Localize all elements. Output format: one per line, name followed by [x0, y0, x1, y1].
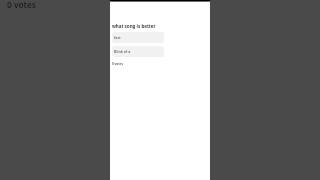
button[interactable]: Vote for Blink of a [112, 46, 164, 57]
staticText: Blink of a [114, 49, 131, 54]
staticText: 0 votes [112, 62, 124, 66]
button[interactable]: Vote for fast [112, 32, 164, 43]
staticText: what song is better [112, 23, 156, 29]
staticText: fast [114, 35, 121, 40]
staticText: 0 votes [7, 0, 36, 10]
